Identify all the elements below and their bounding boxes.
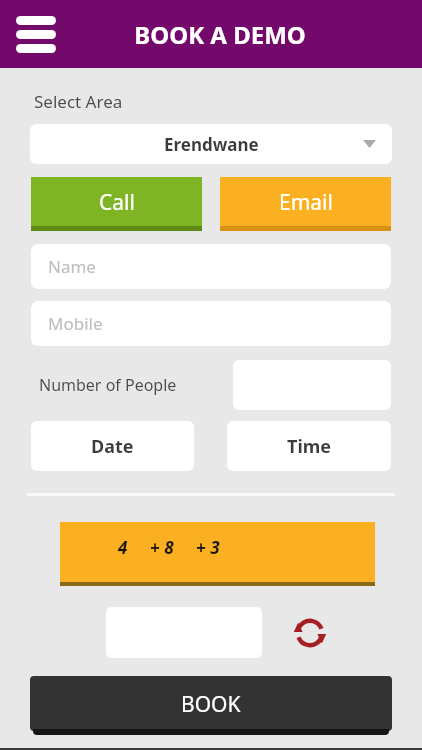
staticText: Call <box>99 188 135 217</box>
button[interactable]: 4 <box>60 522 375 586</box>
staticText: Erendwane <box>164 133 259 156</box>
button[interactable]: Mobile <box>31 301 391 346</box>
staticText: Date <box>91 434 134 459</box>
staticText: Select Area <box>34 90 123 113</box>
staticText: Mobile <box>48 312 103 335</box>
button[interactable]: Open navigation menu <box>8 8 64 60</box>
button[interactable]: Date <box>31 421 194 471</box>
staticText: Time <box>287 434 332 459</box>
button[interactable]: Call <box>31 177 202 231</box>
staticText: Name <box>48 255 96 278</box>
button[interactable]: Refresh captcha <box>290 613 330 653</box>
staticText: + 8 <box>150 536 174 559</box>
staticText: Number of People <box>39 374 177 396</box>
staticText: + 3 <box>196 536 220 559</box>
staticText: BOOK <box>181 690 241 719</box>
button[interactable]: BOOK <box>30 676 392 735</box>
button[interactable]: Time <box>227 421 391 471</box>
staticText: BOOK A DEMO <box>134 18 306 51</box>
button[interactable]: Email <box>220 177 391 231</box>
button[interactable]: Name <box>31 244 391 289</box>
button[interactable]: Erendwane <box>30 124 392 164</box>
staticText: 4 <box>118 536 128 559</box>
staticText: Email <box>279 188 333 217</box>
